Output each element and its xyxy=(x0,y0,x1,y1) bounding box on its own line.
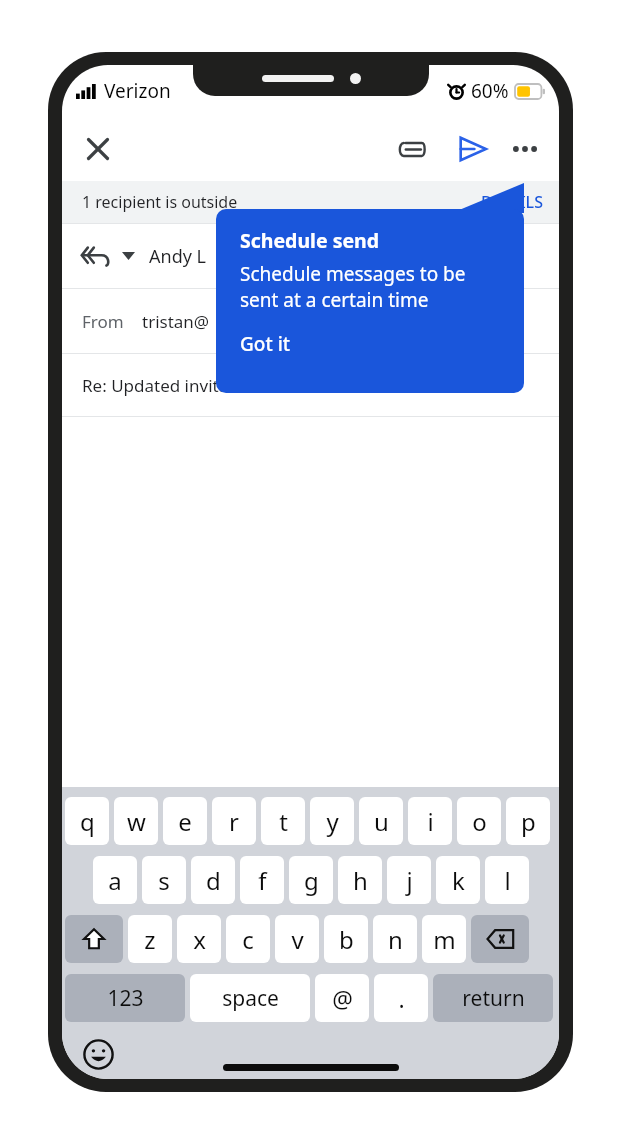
staticText: i xyxy=(427,805,434,838)
button[interactable]: Send xyxy=(447,123,499,175)
button[interactable]: More options xyxy=(499,123,551,175)
button[interactable]: 1 recipient is outside xyxy=(62,181,559,223)
staticText: o xyxy=(472,805,487,838)
button[interactable]: y xyxy=(310,797,354,845)
staticText: y xyxy=(326,805,339,838)
staticText: j xyxy=(406,864,413,897)
button[interactable]: u xyxy=(359,797,403,845)
button[interactable]: m xyxy=(422,915,466,963)
button[interactable]: v xyxy=(275,915,319,963)
button[interactable]: r xyxy=(212,797,256,845)
staticText: z xyxy=(144,923,156,956)
button[interactable]: Close xyxy=(74,125,122,173)
staticText: t xyxy=(279,805,288,838)
staticText: space xyxy=(222,984,279,1013)
staticText: r xyxy=(229,805,239,838)
button[interactable]: s xyxy=(142,856,186,904)
button[interactable]: b xyxy=(324,915,368,963)
staticText: x xyxy=(193,923,206,956)
button[interactable]: Shift xyxy=(65,915,123,963)
button[interactable]: n xyxy=(373,915,417,963)
staticText: l xyxy=(504,864,511,897)
button[interactable]: Emoji xyxy=(78,1034,118,1074)
button[interactable]: e xyxy=(163,797,207,845)
staticText: g xyxy=(304,864,319,897)
staticText: v xyxy=(291,923,304,956)
button[interactable]: x xyxy=(177,915,221,963)
button[interactable]: k xyxy=(436,856,480,904)
button[interactable]: space xyxy=(190,974,310,1022)
button[interactable]: 123 xyxy=(65,974,185,1022)
staticText: f xyxy=(258,864,267,897)
staticText: 123 xyxy=(107,984,144,1013)
button[interactable]: Andy L xyxy=(62,224,559,288)
staticText: @ xyxy=(332,983,353,1014)
staticText: e xyxy=(178,805,192,838)
button[interactable]: Backspace xyxy=(471,915,529,963)
staticText: c xyxy=(242,923,254,956)
staticText: s xyxy=(158,864,170,897)
button[interactable]: Attach file xyxy=(385,123,437,175)
staticText: tristan@ xyxy=(142,310,210,333)
button[interactable]: g xyxy=(289,856,333,904)
staticText: . xyxy=(398,983,405,1014)
button[interactable]: h xyxy=(338,856,382,904)
staticText: From xyxy=(82,310,124,333)
staticText: p xyxy=(521,805,536,838)
staticText: d xyxy=(206,864,221,897)
staticText: Re: Updated invitation with note: Winecu… xyxy=(82,374,439,397)
staticText: Got it xyxy=(240,331,291,357)
button[interactable]: t xyxy=(261,797,305,845)
staticText: Verizon xyxy=(104,78,171,104)
button[interactable]: d xyxy=(191,856,235,904)
button[interactable]: @ xyxy=(315,974,369,1022)
button[interactable]: w xyxy=(114,797,158,845)
button[interactable]: q xyxy=(65,797,109,845)
staticText: Andy L xyxy=(149,244,206,269)
button[interactable]: p xyxy=(506,797,550,845)
button[interactable]: From xyxy=(62,289,559,353)
button[interactable]: a xyxy=(93,856,137,904)
button[interactable]: l xyxy=(485,856,529,904)
staticText: 60% xyxy=(471,78,509,104)
staticText: q xyxy=(80,805,95,838)
staticText: k xyxy=(452,864,465,897)
staticText: Schedule send xyxy=(240,227,380,254)
button[interactable]: . xyxy=(374,974,428,1022)
button[interactable]: return xyxy=(433,974,553,1022)
staticText: w xyxy=(127,805,146,838)
button[interactable]: o xyxy=(457,797,501,845)
staticText: u xyxy=(374,805,389,838)
button[interactable]: i xyxy=(408,797,452,845)
staticText: Schedule messages to be sent at a certai… xyxy=(240,261,506,313)
staticText: return xyxy=(462,984,525,1013)
staticText: b xyxy=(339,923,354,956)
button[interactable]: Re: Updated invitation with note: Winecu… xyxy=(62,354,559,416)
button[interactable]: Got it xyxy=(240,331,291,357)
button[interactable]: f xyxy=(240,856,284,904)
staticText: h xyxy=(353,864,368,897)
button[interactable]: c xyxy=(226,915,270,963)
staticText: n xyxy=(388,923,403,956)
staticText: 1 recipient is outside xyxy=(82,191,238,213)
button[interactable]: z xyxy=(128,915,172,963)
staticText: a xyxy=(108,864,122,897)
staticText: m xyxy=(433,923,456,956)
button[interactable]: j xyxy=(387,856,431,904)
staticText: DETAILS xyxy=(481,191,543,213)
